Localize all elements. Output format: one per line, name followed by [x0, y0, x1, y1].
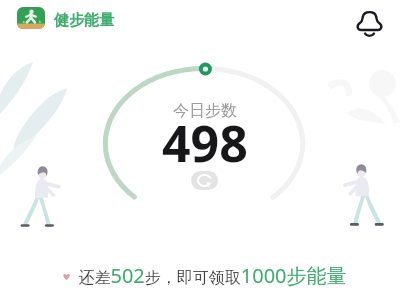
staticText: 498	[162, 109, 248, 177]
button[interactable]: Refresh steps	[191, 171, 218, 190]
staticText: 健步能量	[54, 11, 114, 30]
button[interactable]: Notifications	[352, 6, 386, 38]
staticText: 还差502步，即可领取1000步能量	[78, 262, 347, 289]
staticText: 今日步数	[173, 101, 237, 121]
button[interactable]: App icon	[17, 7, 45, 29]
